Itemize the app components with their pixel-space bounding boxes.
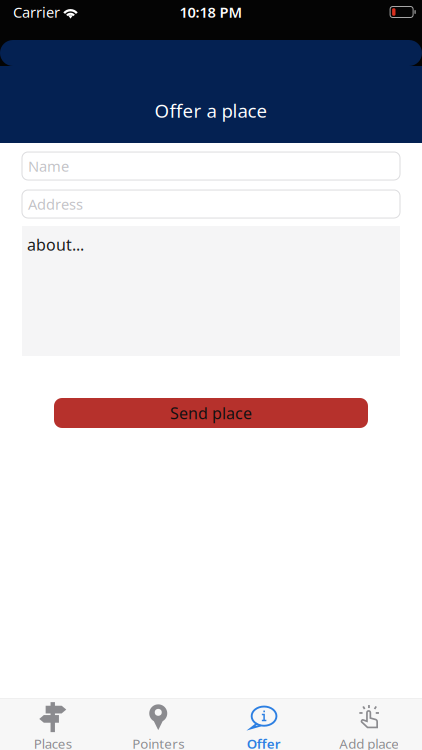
staticText: Add place: [339, 735, 399, 750]
staticText: Pointers: [132, 735, 184, 750]
staticText: Name: [28, 156, 69, 176]
button[interactable]: Send place: [22, 398, 400, 428]
button[interactable]: Name: [22, 152, 400, 180]
button[interactable]: Add place: [316, 699, 422, 750]
staticText: 10:18 PM: [179, 2, 242, 22]
button[interactable]: Places: [0, 699, 105, 750]
button[interactable]: Address: [22, 190, 400, 218]
button[interactable]: Offer: [211, 699, 316, 750]
staticText: Places: [34, 735, 72, 750]
button[interactable]: Pointers: [105, 699, 211, 750]
staticText: Offer: [247, 735, 281, 750]
staticText: about...: [27, 234, 84, 255]
button[interactable]: about...: [22, 226, 400, 356]
staticText: Address: [28, 194, 83, 214]
staticText: Send place: [170, 402, 252, 424]
staticText: Carrier: [13, 2, 60, 22]
staticText: Offer a place: [154, 98, 267, 123]
